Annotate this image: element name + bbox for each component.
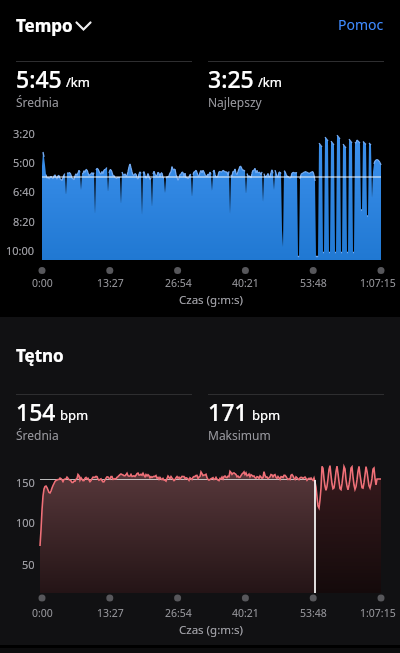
staticText: 40:21 [232,276,259,290]
staticText: /km [258,73,282,91]
staticText: Najlepszy [208,94,262,110]
staticText: Tempo [16,14,73,37]
staticText: bpm [252,406,281,424]
button[interactable]: Pomoc [326,12,388,36]
staticText: Czas (g:m:s) [179,292,244,308]
staticText: 13:27 [97,606,124,620]
staticText: 0:00 [32,606,53,620]
staticText: Średnia [16,94,59,110]
staticText: 0:00 [32,276,53,290]
staticText: /km [66,73,90,91]
staticText: 5:45 [16,63,62,94]
staticText: 26:54 [165,606,192,620]
staticText: 53:48 [300,606,327,620]
staticText: 1:07:15 [360,276,396,290]
button[interactable]: Tempo [10,8,97,43]
staticText: 13:27 [97,276,124,290]
staticText: 150 [16,475,35,490]
staticText: 8:20 [13,214,35,229]
staticText: Pomoc [338,15,384,34]
staticText: Średnia [16,427,59,443]
staticText: 3:20 [13,126,35,141]
staticText: bpm [60,406,89,424]
staticText: 50 [22,557,35,572]
staticText: 6:40 [13,184,35,199]
staticText: 154 [16,396,56,427]
staticText: 5:00 [13,155,35,170]
staticText: 3:25 [208,63,254,94]
staticText: 100 [16,515,35,530]
staticText: Maksimum [208,427,271,443]
staticText: 171 [208,396,248,427]
staticText: Tętno [16,344,64,367]
staticText: 10:00 [6,243,35,258]
staticText: 40:21 [232,606,259,620]
staticText: Czas (g:m:s) [179,622,244,638]
staticText: 26:54 [165,276,192,290]
staticText: 1:07:15 [360,606,396,620]
staticText: 53:48 [300,276,327,290]
